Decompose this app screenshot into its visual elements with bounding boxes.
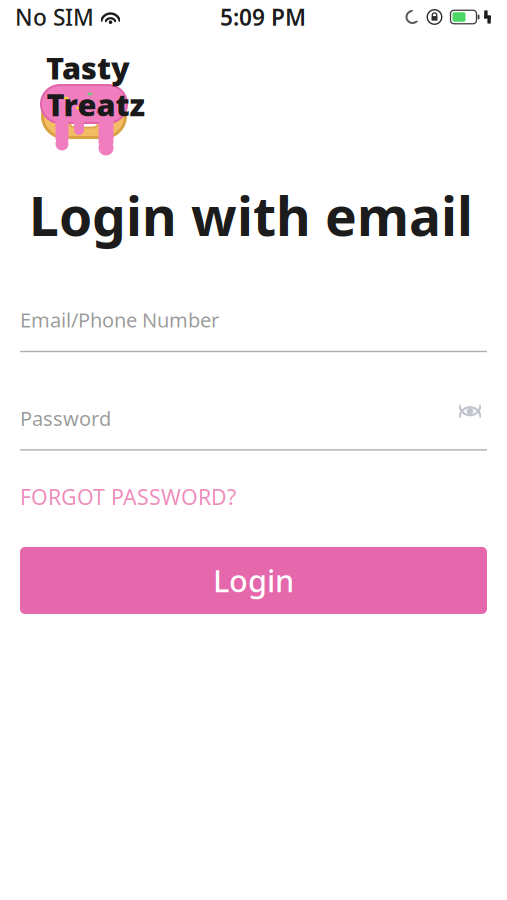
staticText: Email/Phone Number: [20, 306, 219, 333]
staticText: Treatz: [46, 84, 145, 125]
staticText: FORGOT PASSWORD?: [20, 483, 236, 511]
staticText: 5:09 PM: [220, 2, 306, 32]
button[interactable]: Show password: [453, 398, 487, 424]
staticText: Password: [20, 405, 111, 431]
staticText: Tasty: [46, 47, 130, 88]
staticText: No SIM: [15, 2, 94, 32]
button[interactable]: FORGOT PASSWORD?: [20, 480, 236, 514]
staticText: Login: [213, 560, 294, 601]
staticText: Login with email: [29, 180, 473, 251]
button[interactable]: Login: [20, 547, 487, 614]
